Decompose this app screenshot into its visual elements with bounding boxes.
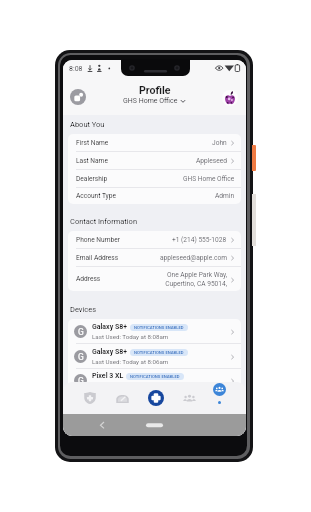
button[interactable]: Account Type xyxy=(68,188,241,204)
button[interactable]: Phone Number xyxy=(68,231,241,248)
button[interactable]: Address xyxy=(68,267,241,291)
button[interactable]: Dashboard xyxy=(106,382,138,414)
staticText: Account Type xyxy=(76,192,116,200)
staticText: Contact Information xyxy=(70,217,138,226)
button[interactable]: Email Address xyxy=(68,249,241,266)
staticText: GHS Home Office xyxy=(183,175,235,183)
staticText: Dealership xyxy=(76,175,108,183)
button[interactable]: Add xyxy=(140,382,172,414)
staticText: NOTIFICATIONS ENABLED xyxy=(134,350,184,355)
button[interactable]: Account xyxy=(70,89,86,105)
button[interactable]: Protection xyxy=(74,382,106,414)
staticText: First Name xyxy=(76,139,109,147)
staticText: Last Used: Today at 8:08am xyxy=(92,333,169,340)
button[interactable]: Brand logo xyxy=(222,90,238,106)
staticText: Email Address xyxy=(76,254,119,262)
staticText: G xyxy=(78,327,84,337)
staticText: Galaxy S8+ xyxy=(92,323,128,331)
staticText: Admin xyxy=(215,192,235,200)
staticText: 8:08 xyxy=(69,65,83,73)
button[interactable]: G xyxy=(68,319,241,343)
button[interactable]: G xyxy=(68,344,241,368)
staticText: About You xyxy=(70,120,105,129)
button[interactable]: Groups xyxy=(173,382,205,414)
staticText: Galaxy S8+ xyxy=(92,348,128,356)
staticText: Appleseed xyxy=(196,157,227,165)
staticText: Profile xyxy=(139,84,171,96)
button[interactable]: First Name xyxy=(68,134,241,151)
staticText: Devices xyxy=(70,305,97,314)
staticText: appleseed@apple.com xyxy=(160,254,227,262)
button[interactable]: Dealership xyxy=(68,170,241,187)
staticText: One Apple Park Way, Cupertino, CA 95014, xyxy=(165,271,227,287)
staticText: Last Name xyxy=(76,157,108,165)
staticText: Phone Number xyxy=(76,236,120,244)
staticText: Pixel 3 XL xyxy=(92,372,124,380)
staticText: NOTIFICATIONS ENABLED xyxy=(130,374,180,379)
staticText: G xyxy=(78,376,84,386)
staticText: G xyxy=(78,352,84,362)
staticText: Address xyxy=(76,275,101,283)
button[interactable]: Last Name xyxy=(68,152,241,169)
button[interactable]: G xyxy=(68,369,241,391)
button[interactable]: Profile xyxy=(203,382,235,409)
button[interactable]: GHS Home Office xyxy=(120,96,189,106)
staticText: GHS Home Office xyxy=(123,97,178,105)
staticText: NOTIFICATIONS ENABLED xyxy=(134,325,184,330)
staticText: John xyxy=(212,139,227,147)
staticText: +1 (214) 555-1028 xyxy=(172,236,227,244)
staticText: Last Used: Today at 8:06am xyxy=(92,358,169,365)
